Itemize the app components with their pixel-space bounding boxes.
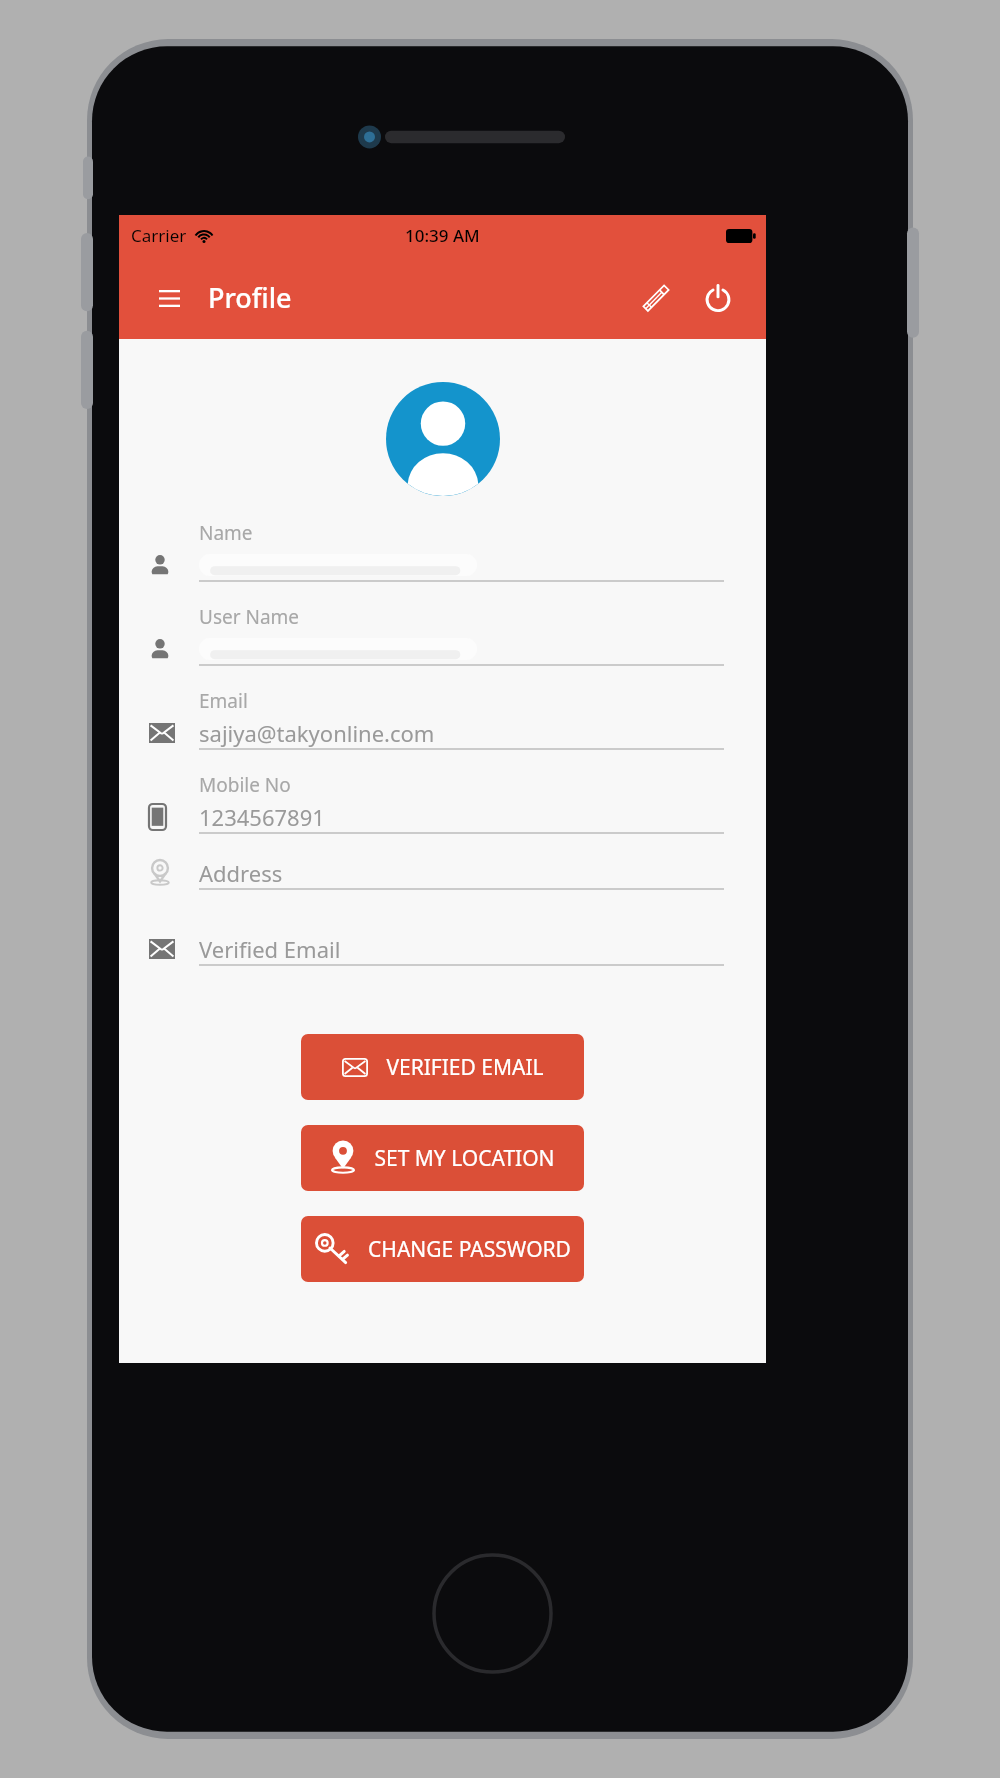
button[interactable]: Name <box>119 520 766 604</box>
staticText: CHANGE PASSWORD <box>368 1235 571 1264</box>
staticText: 1234567891 <box>199 802 325 832</box>
button[interactable]: VERIFIED EMAIL <box>301 1034 584 1100</box>
button[interactable]: Mobile No <box>119 772 766 856</box>
button[interactable]: Edit profile <box>632 274 680 322</box>
staticText: Carrier <box>131 224 187 247</box>
button[interactable]: Open navigation menu <box>149 278 189 318</box>
button[interactable]: Verified Email <box>119 932 766 1008</box>
staticText: Profile <box>208 279 292 316</box>
button[interactable]: User Name <box>119 604 766 688</box>
staticText: VERIFIED EMAIL <box>386 1053 544 1082</box>
staticText: Email <box>199 688 248 714</box>
staticText: Verified Email <box>199 934 341 964</box>
staticText: User Name <box>199 604 300 630</box>
staticText: Address <box>199 858 283 888</box>
staticText: Mobile No <box>199 772 291 798</box>
staticText: SET MY LOCATION <box>374 1144 555 1173</box>
button[interactable]: Log out <box>694 274 742 322</box>
staticText: Name <box>199 520 253 546</box>
button[interactable]: CHANGE PASSWORD <box>301 1216 584 1282</box>
staticText: sajiya@takyonline.com <box>199 718 435 748</box>
staticText: 10:39 AM <box>405 224 480 247</box>
button[interactable]: Address <box>119 856 766 932</box>
button[interactable]: Email <box>119 688 766 772</box>
button[interactable]: SET MY LOCATION <box>301 1125 584 1191</box>
